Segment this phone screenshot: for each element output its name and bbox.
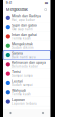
staticText: Oke siap nanti <box>12 27 33 31</box>
staticText: Laporan terbaru <box>12 102 37 105</box>
staticText: Terima kasih <box>12 93 31 96</box>
staticText: Intan dan gahai <box>12 33 37 37</box>
staticText: Mirah dan Raditya <box>12 14 41 18</box>
button[interactable]: Laporan <box>3 97 50 106</box>
button[interactable]: Sarana <box>3 50 50 60</box>
staticText: Supri dan gaboi <box>12 23 37 27</box>
button[interactable]: Intan dan gahai <box>3 32 50 41</box>
button[interactable]: Mirah dan Raditya <box>3 13 50 22</box>
staticText: ▮▮▮ <box>45 2 48 4</box>
button[interactable]: Lestari <box>3 78 50 88</box>
staticText: Belum ada kabar <box>12 65 38 68</box>
button[interactable]: Calls <box>35 109 50 117</box>
staticText: Laporan <box>12 98 25 102</box>
staticText: Sudah dikirim <box>12 46 33 49</box>
staticText: Sudah sampai <box>12 83 33 87</box>
staticText: Baik nanti saya <box>12 55 36 59</box>
button[interactable]: Kelinasan dan upaya <box>3 60 50 69</box>
button[interactable]: Terisi <box>3 69 50 78</box>
button[interactable]: Chats <box>3 109 18 117</box>
staticText: Mengekstrak <box>6 7 28 12</box>
button[interactable]: Mengekstrak <box>3 41 50 50</box>
button[interactable]: Search <box>44 7 48 12</box>
staticText: Wahyudi <box>12 88 26 92</box>
staticText: Mengekstrak <box>12 42 33 46</box>
staticText: 9:41 <box>6 1 12 5</box>
staticText: Hai, apa kabar <box>12 18 35 22</box>
button[interactable]: Wahyudi <box>3 88 50 97</box>
staticText: Sampai jumpa <box>12 74 33 77</box>
staticText: Sarana <box>12 51 23 55</box>
staticText: Kelinasan dan upaya <box>12 61 46 65</box>
button[interactable]: Supri dan gaboi <box>3 22 50 32</box>
staticText: Terisi <box>12 70 21 74</box>
staticText: Lestari <box>12 79 23 83</box>
staticText: Terima kasih <box>12 37 31 40</box>
